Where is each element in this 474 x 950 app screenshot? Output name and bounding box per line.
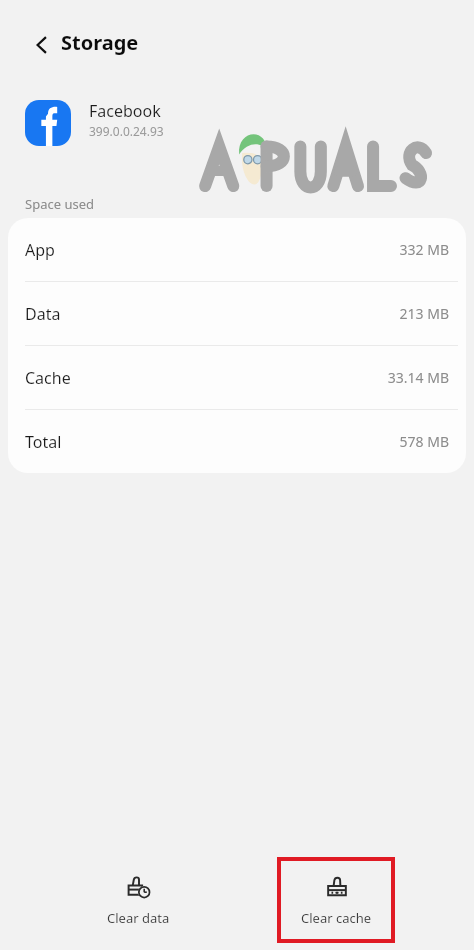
staticText: Clear data: [107, 909, 170, 927]
staticText: 399.0.0.24.93: [89, 123, 164, 139]
button[interactable]: Data: [8, 282, 466, 345]
staticText: 332 MB: [399, 240, 449, 259]
staticText: Space used: [25, 195, 94, 213]
button[interactable]: Clear data: [79, 857, 197, 943]
staticText: Storage: [61, 29, 139, 56]
button[interactable]: Clear cache: [281, 861, 391, 939]
staticText: Cache: [25, 367, 71, 389]
staticText: Facebook: [89, 100, 161, 122]
button[interactable]: Cache: [8, 346, 466, 409]
staticText: App: [25, 239, 55, 261]
staticText: Data: [25, 303, 61, 325]
staticText: Clear cache: [301, 909, 372, 927]
button[interactable]: App: [8, 218, 466, 281]
staticText: 213 MB: [399, 304, 449, 323]
staticText: 33.14 MB: [387, 368, 449, 387]
button[interactable]: Back: [22, 25, 62, 65]
staticText: Total: [25, 431, 62, 453]
staticText: 578 MB: [399, 432, 449, 451]
button[interactable]: Total: [8, 410, 466, 473]
